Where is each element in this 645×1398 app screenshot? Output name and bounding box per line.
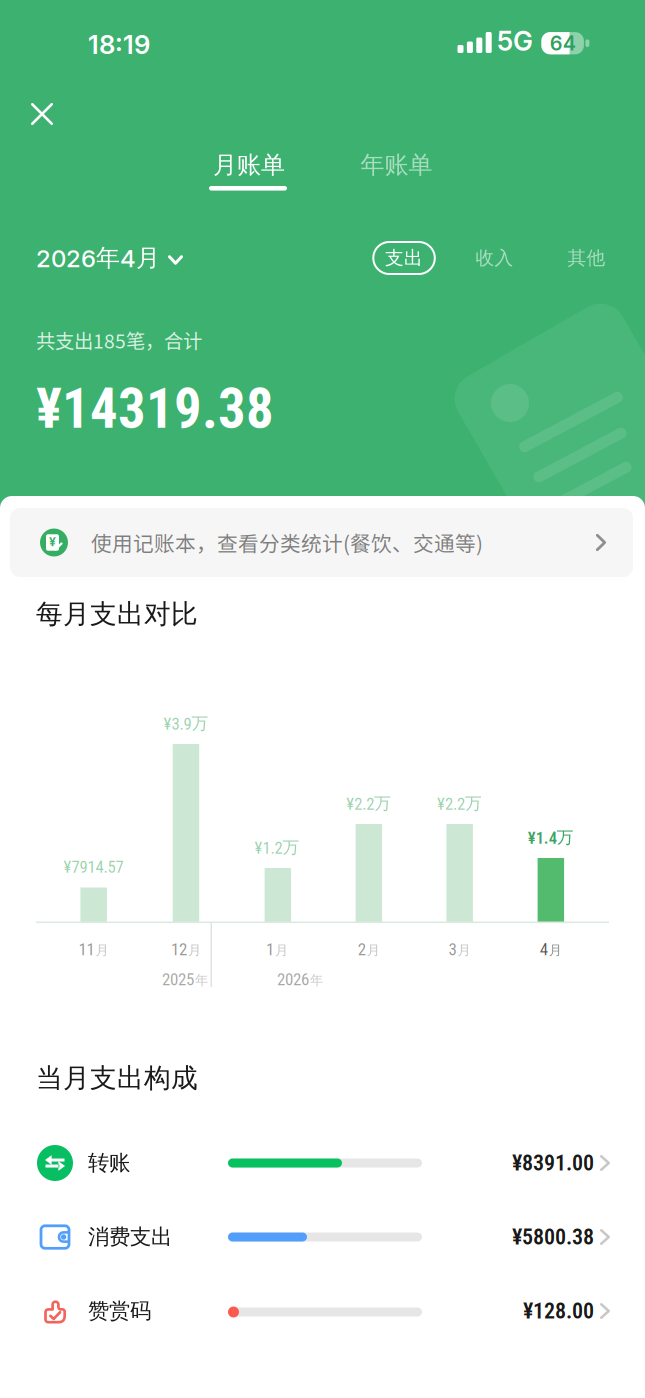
staticText: 月 xyxy=(188,942,201,958)
staticText: 支出 xyxy=(385,246,423,269)
staticText: 年 xyxy=(195,972,208,988)
staticText: 3 xyxy=(449,940,457,959)
staticText: 1 xyxy=(266,940,274,959)
staticText: ¥1.4万 xyxy=(528,827,574,848)
staticText: 转账 xyxy=(88,1150,130,1176)
staticText: ¥2.2万 xyxy=(346,793,391,814)
staticText: 月 xyxy=(275,942,288,958)
staticText: 64 xyxy=(550,31,576,55)
staticText: 年 xyxy=(310,972,323,988)
staticText: 月 xyxy=(367,942,380,958)
staticText: ¥ xyxy=(49,535,56,549)
staticText: 每月支出对比 xyxy=(36,598,198,630)
staticText: 年账单 xyxy=(360,150,432,180)
staticText: 月账单 xyxy=(213,150,285,180)
staticText: ¥128.00 xyxy=(523,1298,594,1324)
staticText: 5G xyxy=(497,25,533,57)
staticText: 12 xyxy=(171,940,187,959)
button[interactable]: 收入 xyxy=(454,241,534,275)
staticText: ¥2.2万 xyxy=(437,793,482,814)
button[interactable]: 年账单 xyxy=(326,148,466,182)
button[interactable]: 月账单 xyxy=(179,148,319,182)
staticText: 收入 xyxy=(475,246,513,269)
staticText: 当月支出构成 xyxy=(36,1062,198,1094)
staticText: ¥1.2万 xyxy=(255,837,300,858)
staticText: 月 xyxy=(458,942,471,958)
button[interactable]: 转账 xyxy=(0,1126,645,1200)
staticText: ¥14319.38 xyxy=(36,377,274,441)
button[interactable]: 支出 xyxy=(373,242,435,274)
button[interactable]: 2026年4月 xyxy=(36,239,183,277)
staticText: 2026 xyxy=(277,970,309,989)
staticText: 2 xyxy=(358,940,366,959)
staticText: ¥3.9万 xyxy=(163,713,208,734)
staticText: 使用记账本，查看分类统计(餐饮、交通等) xyxy=(91,527,483,557)
staticText: 其他 xyxy=(568,246,606,269)
staticText: 11 xyxy=(79,940,95,959)
staticText: 共支出185笔，合计 xyxy=(36,326,202,354)
staticText: 消费支出 xyxy=(88,1224,172,1250)
button[interactable]: 消费支出 xyxy=(0,1200,645,1274)
button[interactable]: 其他 xyxy=(547,241,627,275)
staticText: 18:19 xyxy=(88,29,150,60)
staticText: ¥8391.00 xyxy=(512,1150,594,1176)
button[interactable]: ¥ xyxy=(10,508,633,577)
button[interactable]: Close xyxy=(22,94,62,134)
staticText: 4 xyxy=(540,940,548,959)
staticText: ¥5800.38 xyxy=(512,1224,594,1250)
staticText: 2025 xyxy=(162,970,194,989)
staticText: 赞赏码 xyxy=(88,1298,151,1324)
staticText: 月 xyxy=(549,942,562,958)
staticText: 月 xyxy=(96,942,109,958)
staticText: ¥7914.57 xyxy=(64,857,124,877)
button[interactable]: 赞赏码 xyxy=(0,1274,645,1348)
staticText: 2026年4月 xyxy=(36,243,160,273)
